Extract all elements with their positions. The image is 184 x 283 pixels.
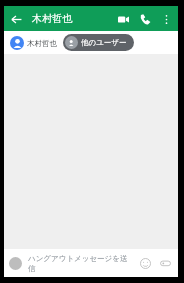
staticText: ハングアウトメッセージを送信 <box>28 254 134 273</box>
button[interactable]: Emoji <box>137 255 153 271</box>
staticText: 木村哲也 <box>32 12 112 25</box>
button[interactable]: More options <box>156 9 176 29</box>
button[interactable]: Video call <box>112 8 134 30</box>
button[interactable]: ハングアウトメッセージを送信 <box>28 254 134 273</box>
staticText: 他のユーザー <box>81 38 127 47</box>
button[interactable]: Back <box>4 7 28 31</box>
button[interactable]: 他のユーザー <box>63 34 134 51</box>
staticText: 木村哲也 <box>27 39 57 48</box>
button[interactable]: Call <box>134 8 156 30</box>
button[interactable]: 木村哲也 <box>9 34 58 52</box>
button[interactable]: Sticker <box>157 255 173 271</box>
button[interactable]: Account <box>9 257 22 270</box>
